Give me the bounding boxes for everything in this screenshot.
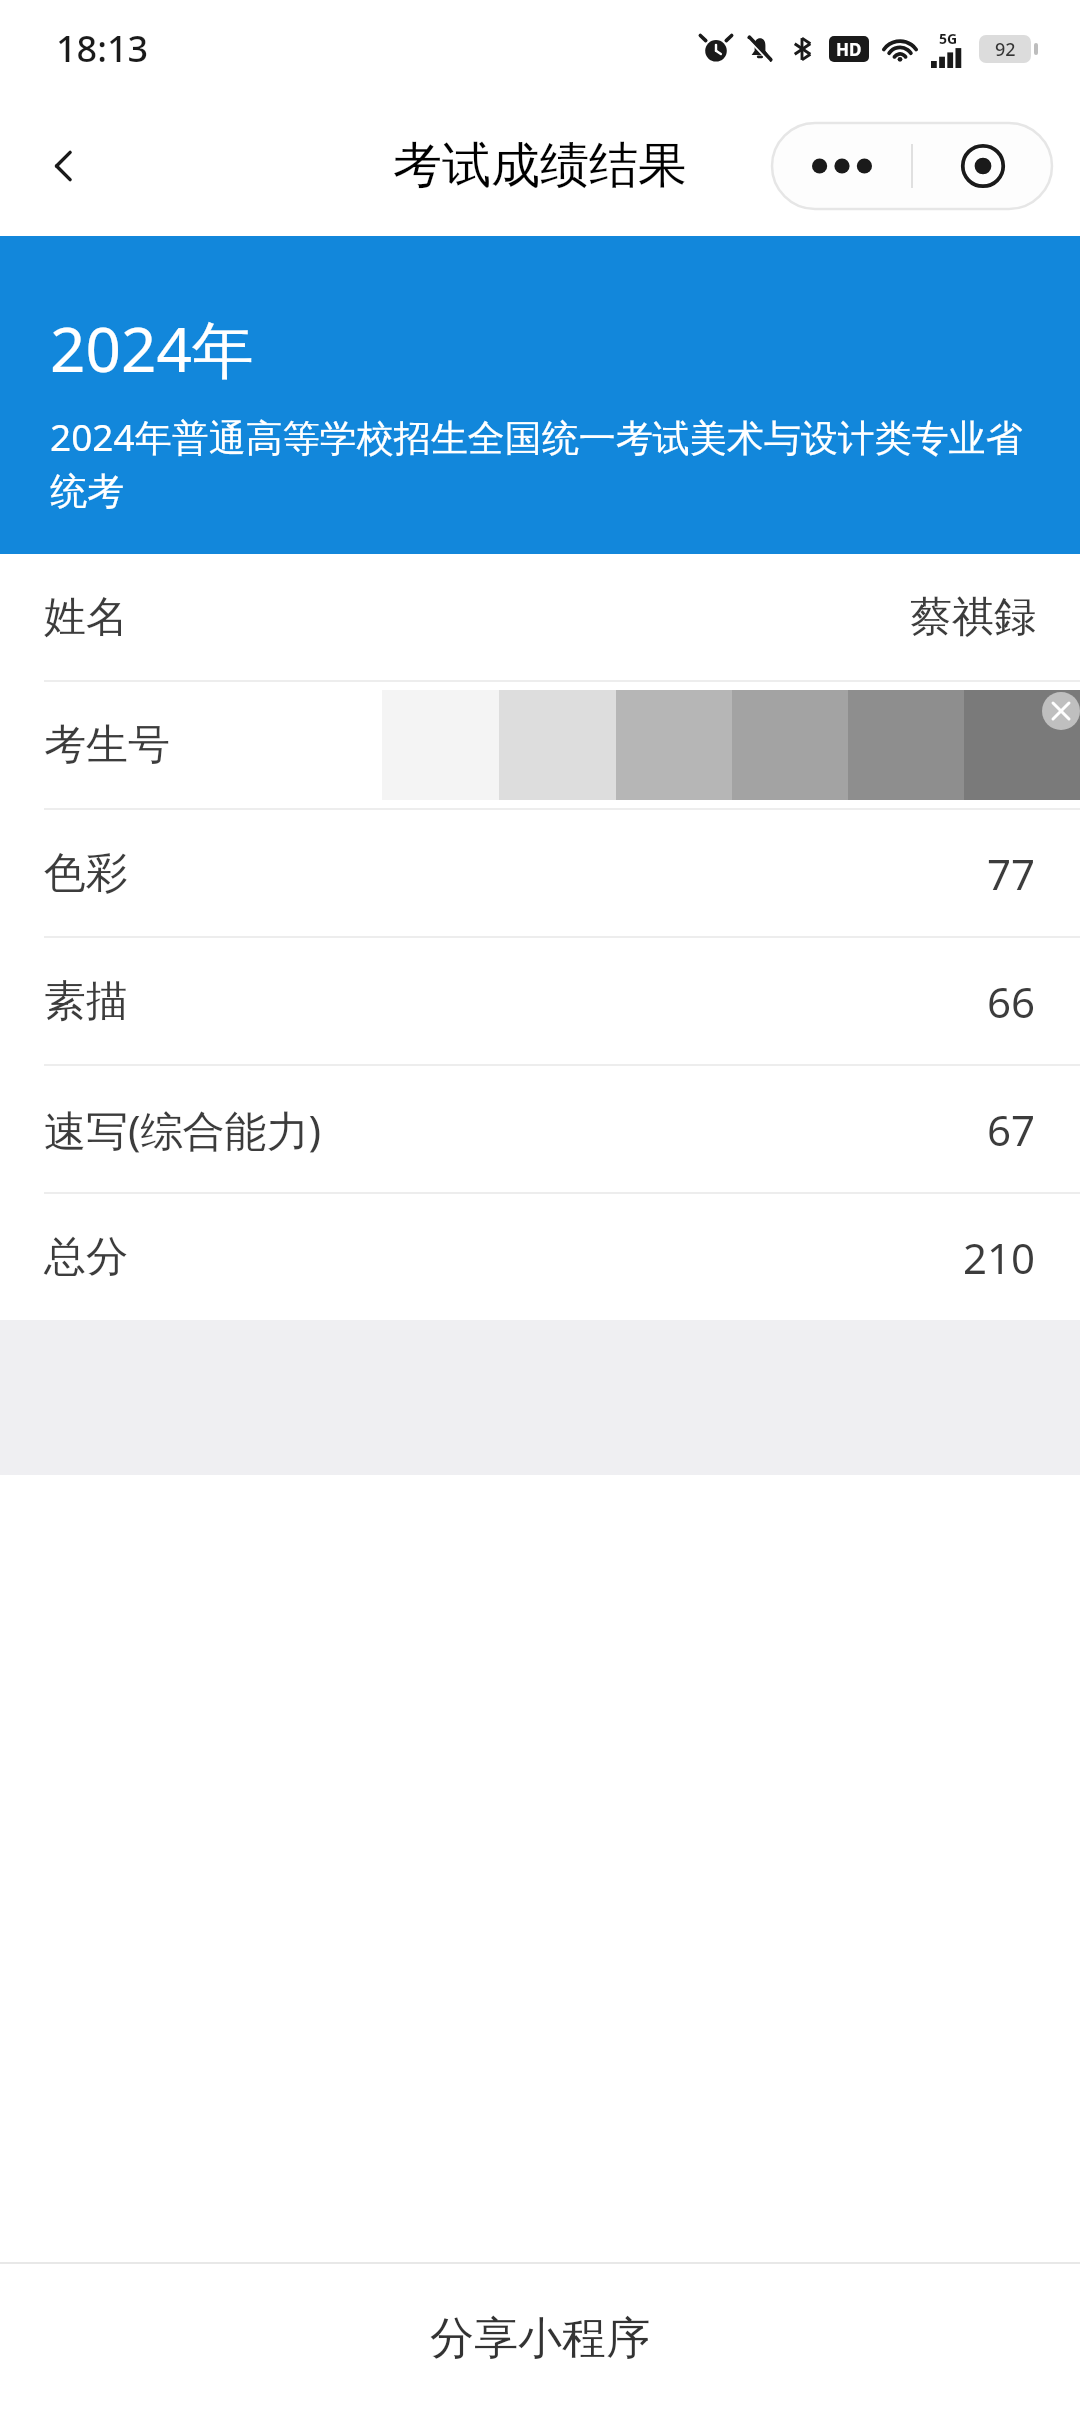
staticText: 速写(综合能力) [44,1101,322,1158]
staticText: 素描 [44,975,128,1028]
button[interactable]: 素描 [0,938,1080,1064]
staticText: 考试成绩结果 [393,135,687,197]
staticText: 2024年普通高等学校招生全国统一考试美术与设计类专业省统考 [50,411,1034,515]
button[interactable]: 总分 [0,1194,1080,1320]
staticText: 蔡祺録 [910,591,1036,644]
staticText: 姓名 [44,591,128,644]
button[interactable]: Dismiss [1042,692,1080,730]
staticText: 考生号 [44,719,170,772]
button[interactable]: 考生号 [0,682,1080,808]
button[interactable]: Back [26,128,102,204]
staticText: 77 [987,845,1036,902]
staticText: 色彩 [44,847,128,900]
staticText: 92 [995,37,1016,62]
staticText: 2024年 [50,306,254,391]
button[interactable]: 姓名 [0,554,1080,680]
button[interactable]: Close [913,123,1052,209]
staticText: 66 [987,973,1036,1030]
staticText: 67 [987,1101,1036,1158]
button[interactable]: More [772,123,911,209]
staticText: 分享小程序 [430,2311,650,2366]
staticText: 18:13 [56,24,149,73]
staticText: 5G [939,29,958,48]
button[interactable]: 速写(综合能力) [0,1066,1080,1192]
staticText: HD [836,38,862,61]
button[interactable]: 分享小程序 [0,2264,1080,2412]
staticText: 210 [963,1229,1036,1286]
button[interactable]: 色彩 [0,810,1080,936]
staticText: 总分 [44,1231,128,1284]
